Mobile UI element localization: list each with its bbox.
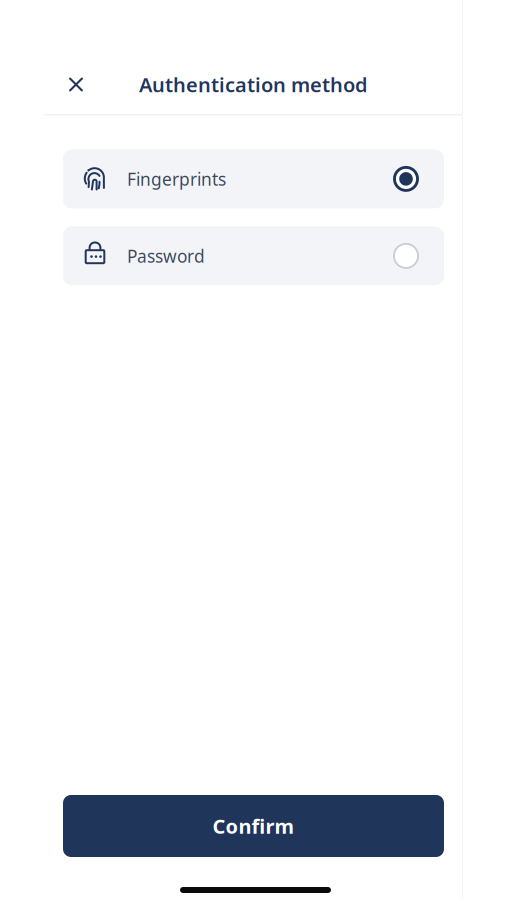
staticText: Authentication method — [139, 71, 368, 98]
staticText: Confirm — [212, 813, 294, 839]
staticText: Password — [127, 244, 205, 267]
button[interactable]: Fingerprints — [63, 149, 444, 208]
button[interactable]: Password — [63, 226, 444, 285]
button[interactable]: Close — [57, 65, 95, 103]
staticText: Fingerprints — [127, 167, 226, 190]
button[interactable]: Confirm — [63, 795, 444, 857]
